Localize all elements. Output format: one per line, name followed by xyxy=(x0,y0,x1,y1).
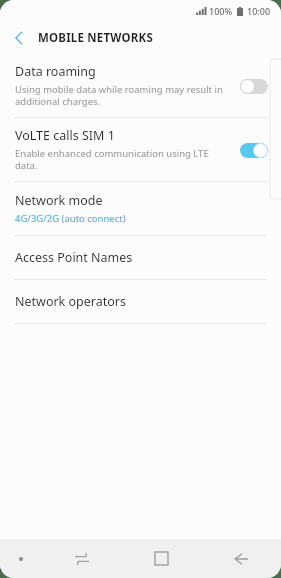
button[interactable]: Back xyxy=(0,22,38,54)
button[interactable]: Home xyxy=(121,539,201,578)
button[interactable]: Off xyxy=(239,76,269,96)
button[interactable]: VoLTE calls SIM 1 xyxy=(0,118,281,181)
staticText: Data roaming xyxy=(15,63,96,80)
staticText: Access Point Names xyxy=(15,249,133,266)
button[interactable]: Access Point Names xyxy=(0,236,281,279)
button[interactable]: Menu dot xyxy=(0,539,42,578)
button[interactable]: Data roaming xyxy=(0,54,281,117)
staticText: 10:00 xyxy=(247,5,271,17)
staticText: Using mobile data while roaming may resu… xyxy=(15,83,223,108)
button[interactable]: Recents xyxy=(42,539,121,578)
button[interactable]: Back xyxy=(201,539,281,578)
button[interactable]: Network operators xyxy=(0,280,281,323)
staticText: MOBILE NETWORKS xyxy=(38,30,153,46)
button[interactable]: On xyxy=(239,140,269,160)
staticText: Network operators xyxy=(15,293,126,310)
staticText: Network mode xyxy=(15,192,103,209)
button[interactable]: Network mode xyxy=(0,182,281,235)
staticText: 4G/3G/2G (auto connect) xyxy=(15,212,126,225)
staticText: VoLTE calls SIM 1 xyxy=(15,127,115,144)
staticText: 100% xyxy=(209,5,233,17)
staticText: Enable enhanced communication using LTE … xyxy=(15,147,209,172)
